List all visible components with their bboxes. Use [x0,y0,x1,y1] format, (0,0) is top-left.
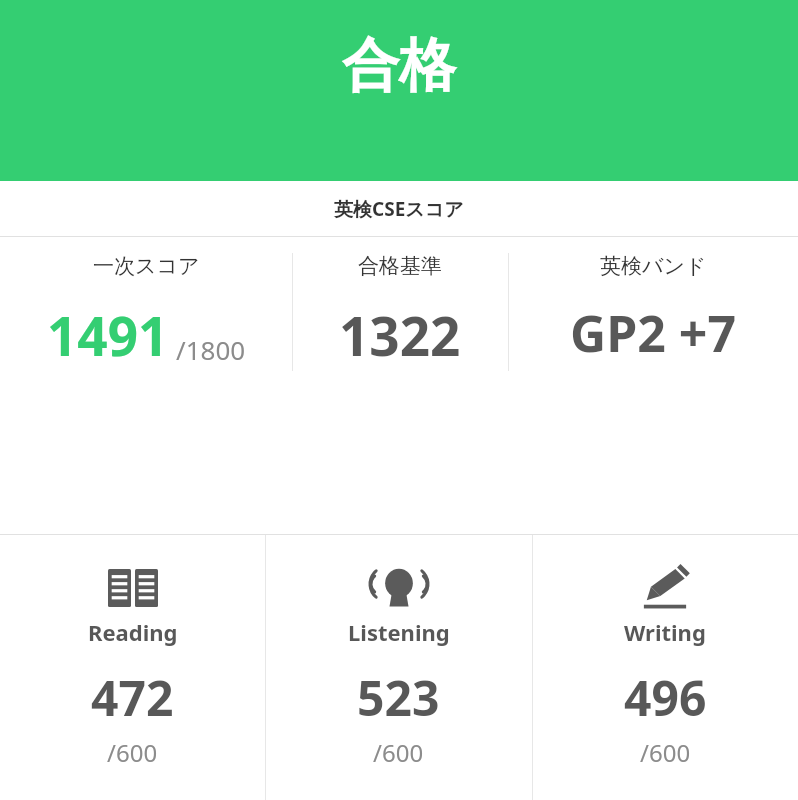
button[interactable]: Reading 472 out of 600 [0,535,265,800]
staticText: 472 [91,665,174,730]
button[interactable]: 英検バンド GP2 plus 7 [508,237,798,534]
staticText: 合格 [342,30,456,102]
staticText: 一次スコア [93,253,200,279]
staticText: /600 [640,736,691,769]
staticText: Reading [88,617,178,647]
button[interactable]: Writing 496 out of 600 [532,535,798,800]
staticText: 523 [357,665,440,730]
button[interactable]: 合格基準 1322 [292,237,508,534]
staticText: 英検バンド [600,253,707,279]
staticText: /1800 [176,332,246,367]
staticText: GP2 +7 [570,299,737,367]
staticText: 1322 [339,299,461,371]
button[interactable]: 一次スコア 1491 out of 1800 [0,237,292,534]
staticText: 英検CSEスコア [334,196,464,222]
staticText: Listening [348,617,450,647]
staticText: 1491 [47,299,169,371]
staticText: 合格基準 [358,253,442,279]
staticText: 496 [624,665,707,730]
staticText: /600 [107,736,158,769]
staticText: Writing [624,617,706,647]
staticText: /600 [373,736,424,769]
button[interactable]: Listening 523 out of 600 [265,535,532,800]
